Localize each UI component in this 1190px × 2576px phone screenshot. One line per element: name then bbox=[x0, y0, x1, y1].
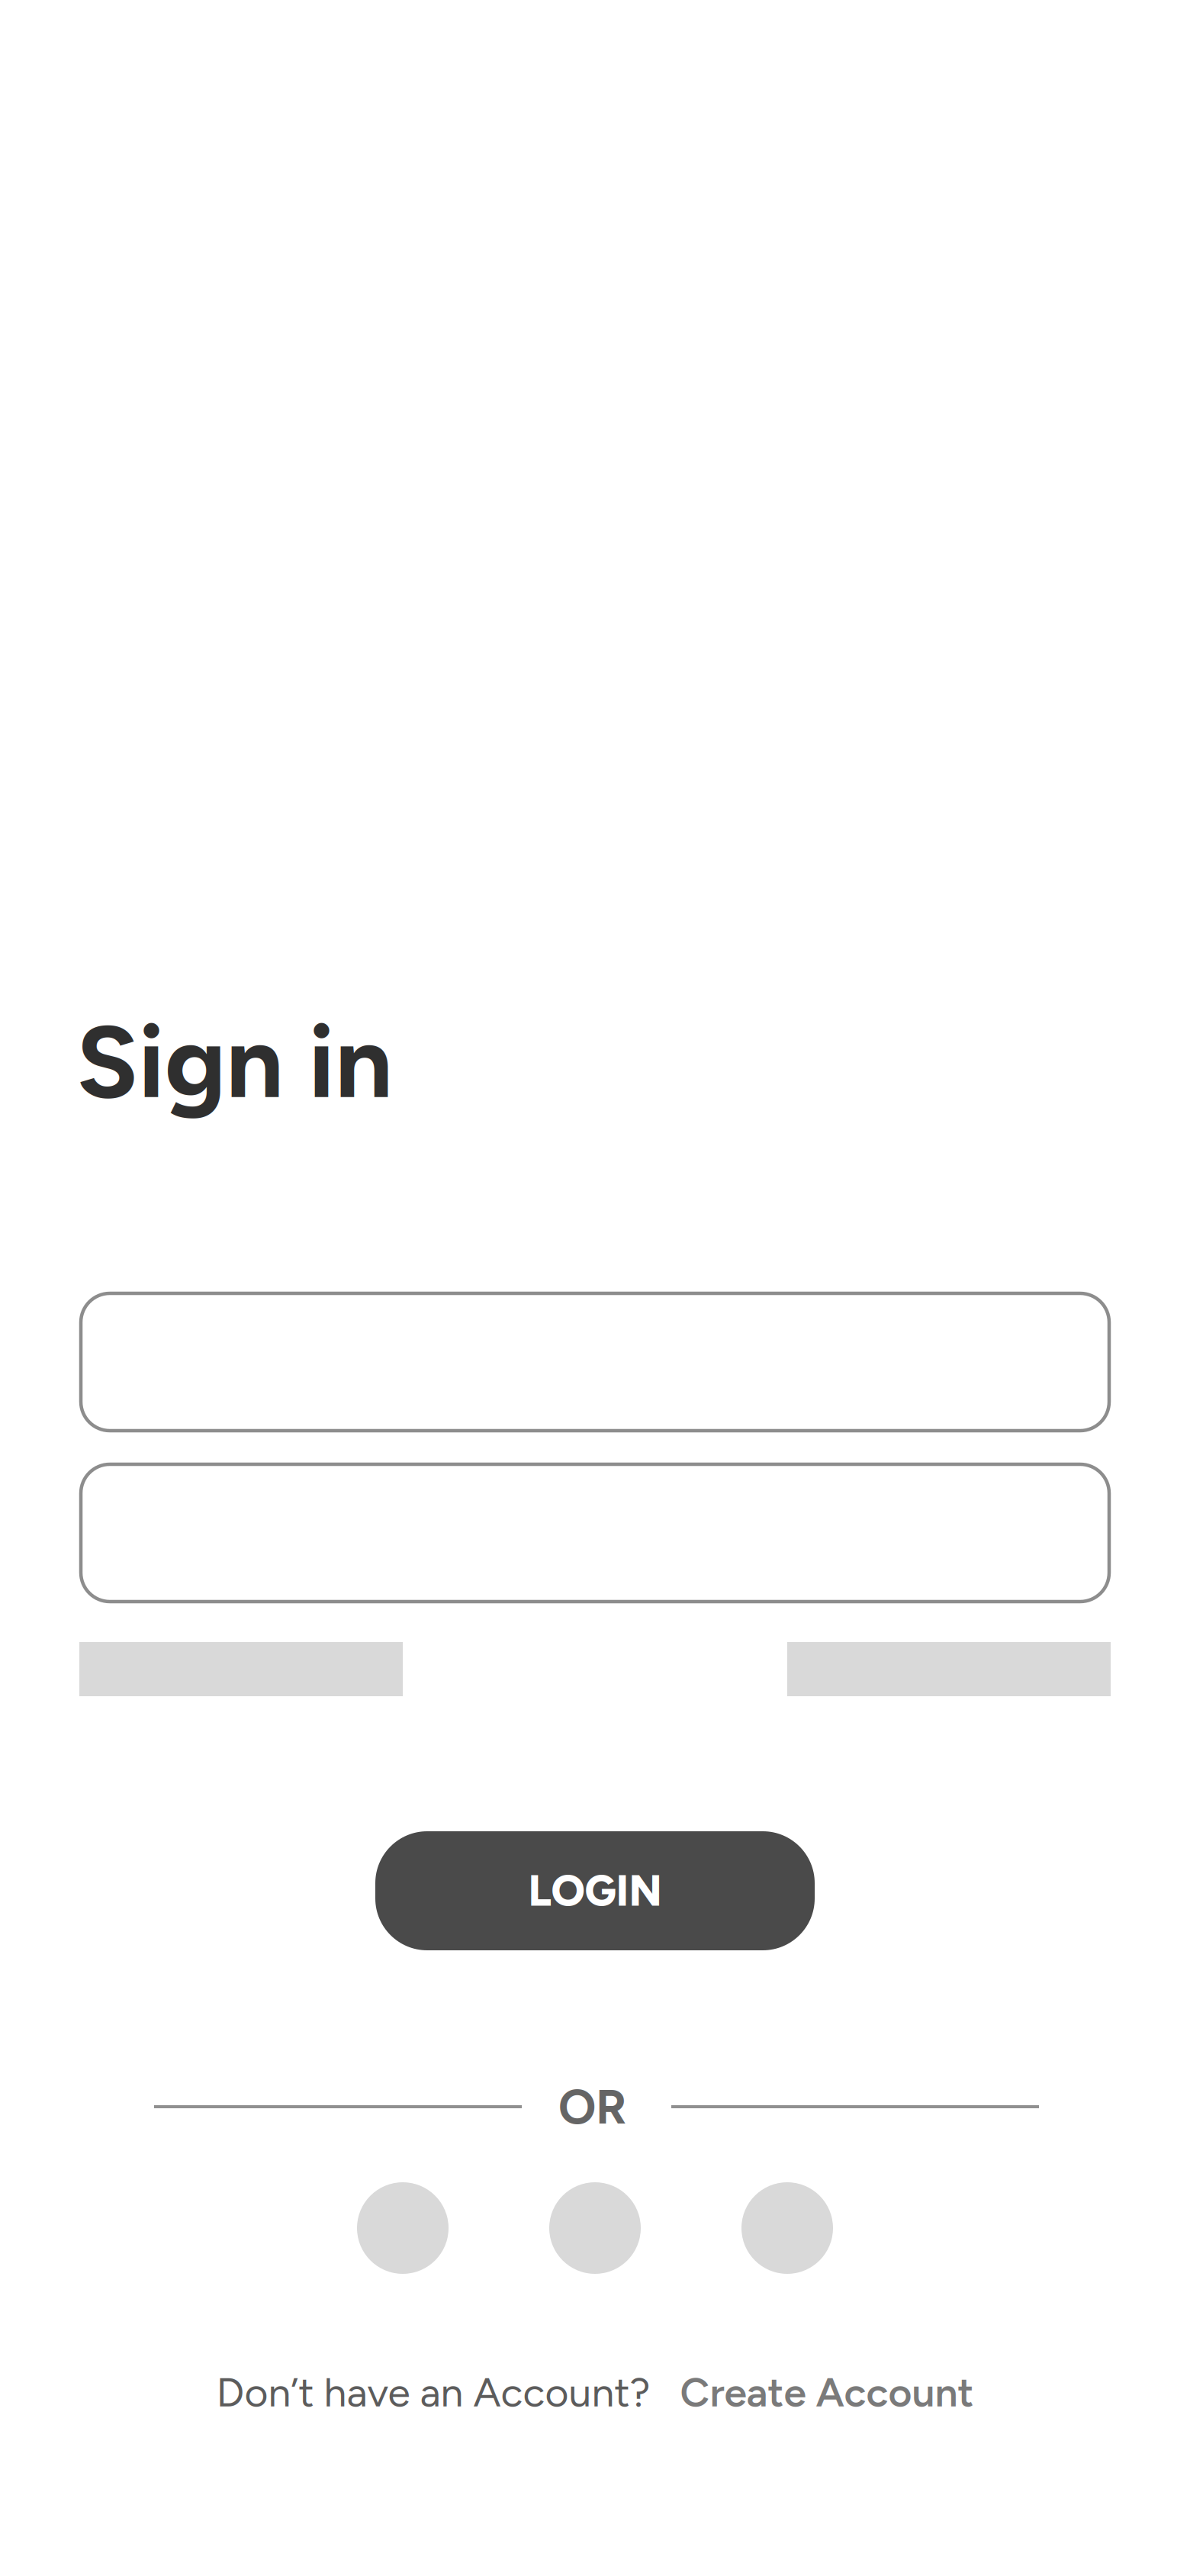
button[interactable]: Continue with Google bbox=[357, 2182, 449, 2274]
button[interactable]: Create Account bbox=[680, 2368, 974, 2417]
staticText: OR bbox=[558, 2078, 626, 2135]
button[interactable]: Continue with Apple bbox=[741, 2182, 833, 2274]
button[interactable]: Email bbox=[81, 1293, 1109, 1431]
staticText: Sign in bbox=[76, 1000, 393, 1122]
staticText: LOGIN bbox=[528, 1865, 662, 1916]
button[interactable]: Forgot password bbox=[787, 1642, 1111, 1696]
staticText: Create Account bbox=[680, 2368, 974, 2417]
staticText: Don’t have an Account? bbox=[216, 2368, 650, 2417]
button[interactable]: LOGIN bbox=[375, 1831, 815, 1950]
button[interactable]: Password bbox=[81, 1464, 1109, 1602]
button[interactable]: Remember me bbox=[79, 1642, 403, 1696]
button[interactable]: Continue with Facebook bbox=[549, 2182, 641, 2274]
